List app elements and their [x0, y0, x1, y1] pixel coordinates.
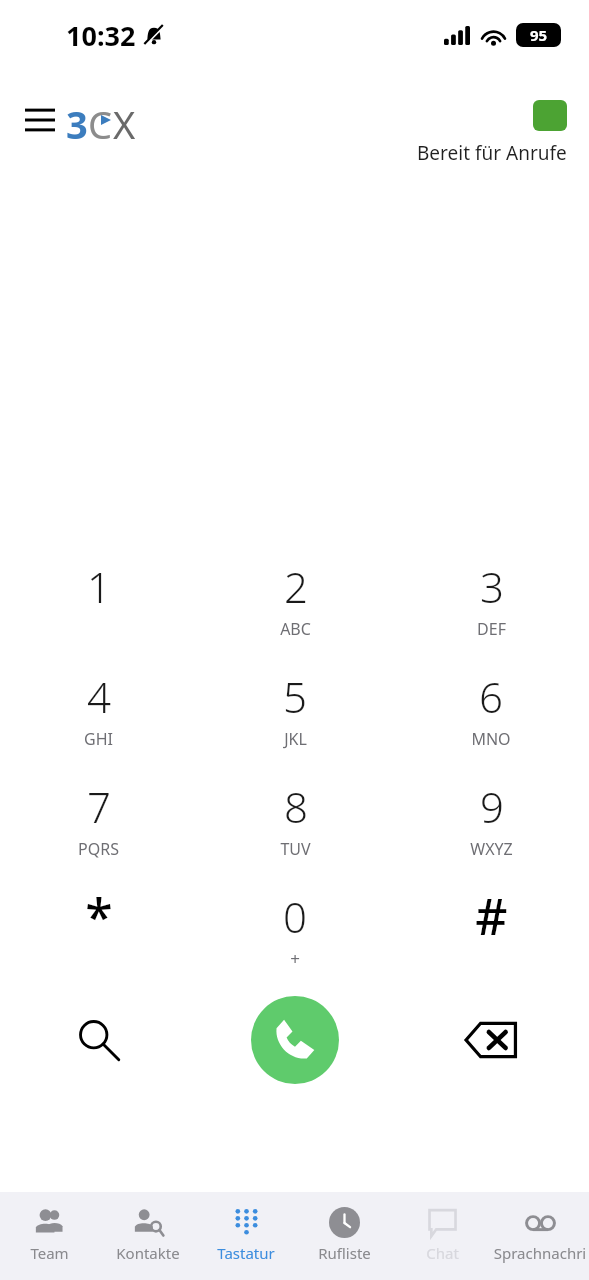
- staticText: 5: [283, 668, 307, 725]
- staticText: 6: [479, 668, 503, 725]
- staticText: 8: [284, 778, 308, 835]
- staticText: X: [113, 98, 136, 142]
- button[interactable]: Menu: [18, 98, 62, 142]
- button[interactable]: Chat: [393, 1192, 491, 1280]
- button[interactable]: #: [393, 878, 589, 988]
- staticText: 7: [87, 778, 111, 835]
- button[interactable]: 6: [393, 658, 589, 768]
- staticText: 4: [87, 668, 111, 725]
- button[interactable]: 7: [0, 768, 197, 878]
- staticText: GHI: [84, 728, 113, 750]
- button[interactable]: Call: [251, 996, 339, 1084]
- staticText: JKL: [284, 728, 307, 750]
- staticText: +: [290, 947, 300, 970]
- button[interactable]: Sprachnachri…: [491, 1192, 589, 1280]
- staticText: 9: [480, 778, 504, 835]
- button[interactable]: 0: [197, 878, 393, 988]
- staticText: 2: [284, 558, 308, 615]
- button[interactable]: Tastatur: [197, 1192, 295, 1280]
- staticText: #: [475, 882, 508, 950]
- staticText: Tastatur: [217, 1243, 275, 1263]
- staticText: Kontakte: [116, 1243, 180, 1263]
- staticText: 3: [66, 98, 88, 142]
- staticText: Bereit für Anrufe: [417, 140, 567, 166]
- button[interactable]: Kontakte: [99, 1192, 197, 1280]
- staticText: 10:32: [66, 17, 136, 54]
- staticText: Rufliste: [318, 1243, 371, 1263]
- staticText: ABC: [280, 618, 311, 640]
- button[interactable]: 8: [197, 768, 393, 878]
- button[interactable]: Rufliste: [295, 1192, 393, 1280]
- staticText: PQRS: [78, 838, 119, 860]
- staticText: 3: [480, 558, 504, 615]
- button[interactable]: *: [0, 878, 197, 988]
- button[interactable]: 3: [66, 98, 136, 142]
- button[interactable]: 9: [393, 768, 589, 878]
- staticText: Sprachnachri…: [491, 1243, 589, 1263]
- staticText: MNO: [471, 728, 511, 750]
- staticText: C: [88, 98, 113, 142]
- button[interactable]: 2: [197, 548, 393, 658]
- staticText: Team: [30, 1243, 69, 1263]
- button[interactable]: 3: [393, 548, 589, 658]
- staticText: *: [85, 882, 113, 950]
- button[interactable]: Search: [0, 988, 197, 1092]
- button[interactable]: Team: [0, 1192, 99, 1280]
- button[interactable]: Bereit für Anrufe: [417, 100, 567, 166]
- staticText: 1: [87, 558, 111, 615]
- button[interactable]: 4: [0, 658, 197, 768]
- button[interactable]: 5: [197, 658, 393, 768]
- button[interactable]: 1: [0, 548, 197, 658]
- staticText: 0: [283, 888, 307, 945]
- staticText: DEF: [477, 618, 506, 640]
- staticText: WXYZ: [470, 838, 513, 860]
- staticText: TUV: [280, 838, 311, 860]
- staticText: 95: [530, 25, 548, 45]
- staticText: Chat: [426, 1243, 459, 1263]
- button[interactable]: Backspace: [393, 988, 589, 1092]
